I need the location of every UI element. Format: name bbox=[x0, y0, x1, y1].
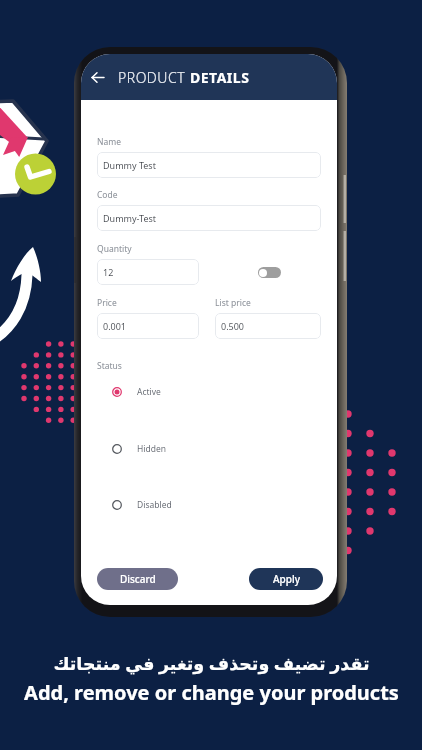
staticText: Disabled bbox=[137, 499, 172, 511]
staticText: تقدر تضيف وتحذف وتغير في منتجاتك bbox=[53, 651, 370, 675]
staticText: Dummy-Test bbox=[103, 212, 157, 224]
staticText: Add, remove or change your products bbox=[24, 679, 399, 706]
staticText: 12 bbox=[103, 266, 114, 278]
staticText: 0.001 bbox=[103, 320, 127, 332]
button[interactable]: Toggle availability bbox=[258, 267, 281, 278]
staticText: Hidden bbox=[137, 443, 166, 455]
staticText: PRODUCT bbox=[118, 68, 190, 87]
staticText: Dummy Test bbox=[103, 159, 156, 171]
button[interactable]: Discard bbox=[97, 568, 178, 590]
button[interactable]: Dummy Test bbox=[97, 152, 321, 178]
button[interactable]: 12 bbox=[97, 259, 199, 285]
button[interactable]: 0.500 bbox=[215, 313, 321, 339]
staticText: Status bbox=[97, 360, 122, 372]
staticText: 0.500 bbox=[221, 320, 245, 332]
staticText: Active bbox=[137, 386, 161, 398]
staticText: Code bbox=[97, 189, 118, 201]
staticText: DETAILS bbox=[190, 68, 250, 87]
button[interactable]: Disabled bbox=[97, 495, 277, 515]
button[interactable]: 0.001 bbox=[97, 313, 199, 339]
button[interactable]: Hidden bbox=[97, 439, 277, 459]
button[interactable]: Apply bbox=[249, 568, 323, 590]
staticText: Apply bbox=[273, 572, 300, 586]
button[interactable]: Dummy-Test bbox=[97, 205, 321, 231]
staticText: List price bbox=[215, 297, 251, 309]
staticText: Quantity bbox=[97, 243, 132, 255]
staticText: Name bbox=[97, 136, 121, 148]
button[interactable]: Back bbox=[85, 65, 109, 89]
staticText: Discard bbox=[120, 572, 156, 586]
button[interactable]: Active bbox=[97, 382, 277, 402]
staticText: Price bbox=[97, 297, 117, 309]
